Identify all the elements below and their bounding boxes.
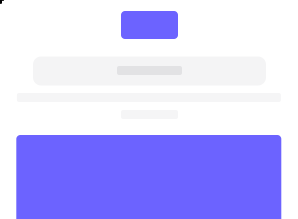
button[interactable]: Featured card <box>16 135 281 219</box>
button[interactable]: Primary action <box>121 11 178 39</box>
button[interactable]: Search field <box>33 56 266 85</box>
